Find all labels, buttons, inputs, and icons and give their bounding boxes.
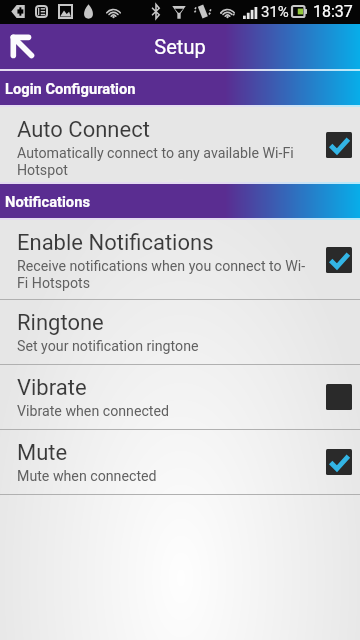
staticText: Receive notifications when you connect t… xyxy=(17,258,312,291)
staticText: Setup xyxy=(154,35,206,58)
staticText: Vibrate xyxy=(17,375,87,401)
button[interactable]: Enabled, checked xyxy=(316,107,352,182)
staticText: 31% xyxy=(261,3,289,21)
button[interactable]: Enable Notifications xyxy=(0,220,360,299)
button[interactable]: Enabled, checked xyxy=(316,220,352,299)
staticText: Auto Connect xyxy=(17,117,150,143)
staticText: Set your notification ringtone xyxy=(17,338,199,355)
staticText: 18:37 xyxy=(313,2,353,21)
button[interactable]: Mute xyxy=(0,430,360,494)
staticText: Notifications xyxy=(5,193,90,210)
staticText: Mute when connected xyxy=(17,468,157,485)
button[interactable]: Disabled, unchecked xyxy=(316,365,352,429)
button[interactable]: Auto Connect xyxy=(0,107,360,182)
staticText: Vibrate when connected xyxy=(17,403,170,420)
staticText: Ringtone xyxy=(17,310,104,336)
staticText: Login Configuration xyxy=(5,80,136,97)
button[interactable]: Enabled, checked xyxy=(316,430,352,494)
button[interactable]: Ringtone xyxy=(0,300,360,364)
staticText: Mute xyxy=(17,440,68,466)
staticText: Enable Notifications xyxy=(17,230,214,256)
staticText: Automatically connect to any available W… xyxy=(17,145,312,178)
button[interactable]: Back xyxy=(0,24,46,69)
button[interactable]: Vibrate xyxy=(0,365,360,429)
